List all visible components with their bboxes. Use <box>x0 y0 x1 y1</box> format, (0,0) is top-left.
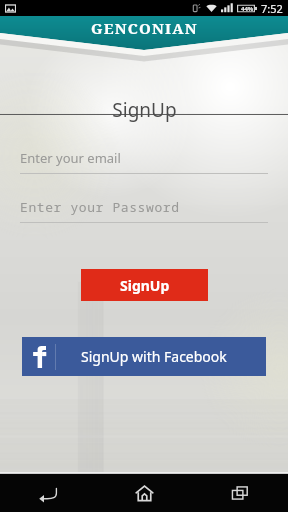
button[interactable]: Enter your Password <box>20 198 268 223</box>
staticText: GENCONIAN <box>91 18 198 38</box>
staticText: SignUp with Facebook <box>81 347 227 366</box>
button[interactable]: SignUp <box>81 269 208 301</box>
staticText: Enter your Password <box>20 198 180 216</box>
staticText: Enter your email <box>20 149 121 167</box>
staticText: 44% <box>241 5 254 13</box>
staticText: 7:52 <box>261 1 283 16</box>
button[interactable]: Recent apps <box>192 474 288 512</box>
staticText: SignUp <box>112 97 177 123</box>
button[interactable]: Back <box>0 474 96 512</box>
button[interactable]: Home <box>96 474 192 512</box>
button[interactable]: SignUp with Facebook <box>22 337 266 376</box>
button[interactable]: Enter your email <box>20 149 268 174</box>
staticText: SignUp <box>120 276 170 295</box>
